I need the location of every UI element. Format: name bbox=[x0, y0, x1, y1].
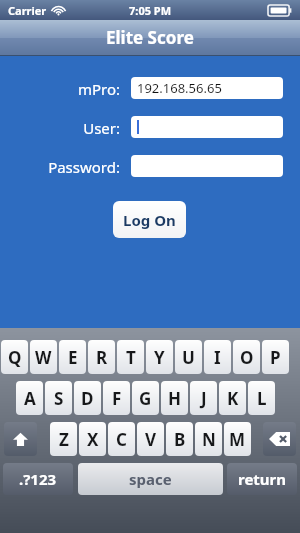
staticText: W bbox=[35, 346, 52, 369]
button[interactable]: P bbox=[262, 340, 289, 374]
staticText: E bbox=[68, 346, 78, 369]
button[interactable]: R bbox=[88, 340, 115, 374]
button[interactable]: .?123 bbox=[3, 463, 73, 495]
staticText: 7:05 PM bbox=[129, 3, 172, 18]
button[interactable]: A bbox=[16, 381, 43, 415]
button[interactable]: V bbox=[137, 422, 164, 456]
button[interactable] bbox=[131, 116, 283, 138]
button[interactable]: C bbox=[108, 422, 135, 456]
staticText: G bbox=[139, 387, 152, 410]
staticText: V bbox=[145, 428, 157, 451]
button[interactable]: return bbox=[227, 463, 297, 495]
staticText: .?123 bbox=[19, 469, 57, 489]
staticText: T bbox=[126, 346, 136, 369]
button[interactable]: G bbox=[132, 381, 159, 415]
staticText: S bbox=[54, 387, 64, 410]
button[interactable]: Y bbox=[146, 340, 173, 374]
staticText: Y bbox=[154, 346, 165, 369]
staticText: M bbox=[229, 428, 246, 451]
button[interactable]: Q bbox=[1, 340, 28, 374]
button[interactable]: space bbox=[78, 463, 223, 495]
button[interactable]: E bbox=[59, 340, 86, 374]
staticText: Carrier bbox=[8, 3, 47, 18]
button[interactable]: J bbox=[190, 381, 217, 415]
staticText: Q bbox=[8, 346, 22, 369]
staticText: L bbox=[257, 387, 267, 410]
button[interactable]: T bbox=[117, 340, 144, 374]
button[interactable]: K bbox=[219, 381, 246, 415]
button[interactable]: I bbox=[204, 340, 231, 374]
button[interactable]: B bbox=[166, 422, 193, 456]
button[interactable] bbox=[131, 155, 283, 177]
staticText: 192.168.56.65 bbox=[137, 79, 222, 97]
staticText: B bbox=[174, 428, 186, 451]
staticText: F bbox=[112, 387, 122, 410]
button[interactable]: Delete bbox=[263, 422, 296, 456]
staticText: mPro: bbox=[12, 79, 120, 99]
staticText: space bbox=[129, 469, 172, 489]
button[interactable]: X bbox=[79, 422, 106, 456]
button[interactable]: Z bbox=[50, 422, 77, 456]
staticText: O bbox=[240, 346, 254, 369]
button[interactable]: W bbox=[30, 340, 57, 374]
staticText: P bbox=[270, 346, 281, 369]
staticText: J bbox=[201, 387, 207, 410]
button[interactable]: Shift bbox=[4, 422, 37, 456]
staticText: X bbox=[87, 428, 99, 451]
button[interactable]: O bbox=[233, 340, 260, 374]
staticText: Elite Score bbox=[106, 26, 194, 49]
button[interactable]: U bbox=[175, 340, 202, 374]
staticText: Z bbox=[59, 428, 69, 451]
staticText: Log On bbox=[123, 210, 176, 230]
staticText: C bbox=[116, 428, 127, 451]
staticText: return bbox=[238, 469, 287, 489]
button[interactable]: L bbox=[248, 381, 275, 415]
button[interactable]: H bbox=[161, 381, 188, 415]
staticText: Password: bbox=[12, 157, 120, 177]
button[interactable]: M bbox=[224, 422, 251, 456]
staticText: I bbox=[214, 346, 221, 369]
button[interactable]: 192.168.56.65 bbox=[131, 77, 283, 99]
staticText: User: bbox=[12, 118, 120, 138]
staticText: R bbox=[96, 346, 108, 369]
button[interactable]: N bbox=[195, 422, 222, 456]
staticText: D bbox=[81, 387, 94, 410]
staticText: K bbox=[227, 387, 239, 410]
staticText: A bbox=[24, 387, 36, 410]
staticText: H bbox=[168, 387, 182, 410]
staticText: U bbox=[182, 346, 195, 369]
staticText: N bbox=[202, 428, 216, 451]
button[interactable]: Log On bbox=[113, 201, 186, 238]
button[interactable]: S bbox=[45, 381, 72, 415]
button[interactable]: F bbox=[103, 381, 130, 415]
button[interactable]: D bbox=[74, 381, 101, 415]
